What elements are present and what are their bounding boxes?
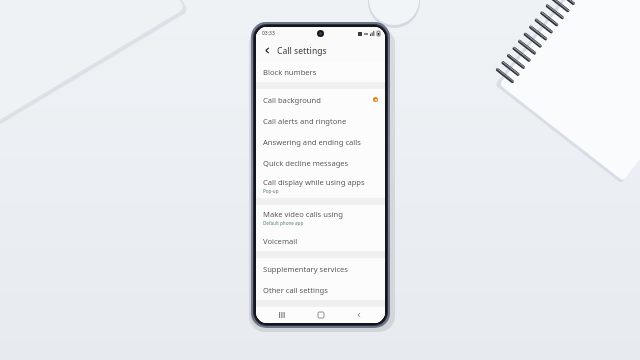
button[interactable]: Quick decline messages bbox=[256, 152, 385, 173]
button[interactable]: Call background bbox=[256, 89, 385, 110]
button[interactable]: Block numbers bbox=[256, 61, 385, 82]
staticText: Call settings bbox=[277, 45, 327, 57]
staticText: Call display while using apps bbox=[263, 177, 365, 187]
button[interactable]: Home bbox=[308, 307, 334, 323]
staticText: Voicemail bbox=[263, 236, 298, 246]
staticText: Other call settings bbox=[263, 285, 328, 295]
staticText: Supplementary services bbox=[263, 264, 348, 274]
button[interactable]: Supplementary services bbox=[256, 258, 385, 279]
button[interactable]: Answering and ending calls bbox=[256, 131, 385, 152]
button[interactable]: Back bbox=[260, 43, 275, 58]
button[interactable]: Call display while using apps bbox=[256, 173, 385, 198]
staticText: Call alerts and ringtone bbox=[263, 116, 347, 126]
staticText: Make video calls using bbox=[263, 209, 343, 219]
staticText: Quick decline messages bbox=[263, 158, 349, 168]
button[interactable]: Make video calls using bbox=[256, 205, 385, 230]
button[interactable]: Back bbox=[346, 307, 372, 323]
button[interactable]: Call alerts and ringtone bbox=[256, 110, 385, 131]
staticText: 03:33 bbox=[262, 30, 275, 37]
button[interactable]: Other call settings bbox=[256, 279, 385, 300]
staticText: Answering and ending calls bbox=[263, 137, 361, 147]
staticText: Block numbers bbox=[263, 67, 317, 77]
staticText: Pop-up bbox=[263, 188, 279, 194]
staticText: Default phone app bbox=[263, 220, 304, 226]
button[interactable]: Voicemail bbox=[256, 230, 385, 251]
staticText: Call background bbox=[263, 95, 321, 105]
button[interactable]: Recent apps bbox=[269, 307, 295, 323]
